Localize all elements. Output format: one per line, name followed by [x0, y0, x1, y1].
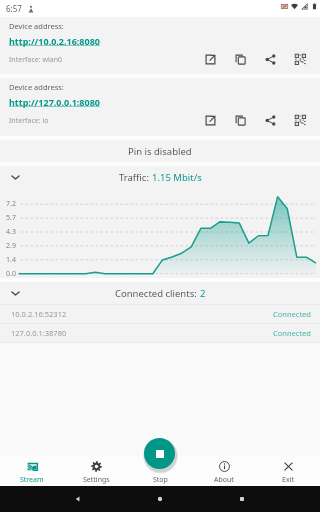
staticText: Interface: lo — [9, 116, 49, 126]
staticText: Exit — [282, 475, 294, 485]
staticText: 6:57 — [6, 3, 22, 14]
staticText: http://127.0.0.1:8080 — [9, 96, 100, 108]
staticText: Connected — [273, 328, 311, 338]
button[interactable]: Open in browser — [195, 42, 225, 77]
button[interactable]: Stop streaming — [144, 438, 175, 469]
button[interactable]: 10.0.2.16:52312 — [0, 305, 320, 323]
button[interactable]: Exit — [256, 456, 320, 486]
staticText: Interface: wlan0 — [9, 55, 62, 65]
button[interactable]: Share address — [255, 42, 285, 77]
staticText: Stream — [20, 475, 44, 485]
button[interactable]: Share address — [255, 103, 285, 138]
staticText: 5.7 — [6, 213, 16, 223]
staticText: 7.2 — [6, 199, 16, 209]
button[interactable]: Connected clients: — [0, 282, 320, 304]
staticText: Traffic: — [119, 171, 152, 184]
button[interactable]: Open in browser — [195, 103, 225, 138]
button[interactable]: Stop — [128, 456, 192, 486]
other: Home — [156, 495, 164, 503]
button[interactable]: Show QR code — [285, 103, 315, 138]
staticText: Device address: — [9, 82, 64, 92]
other: Back — [74, 495, 82, 503]
staticText: 10.0.2.16:52312 — [11, 309, 67, 319]
staticText: Stop — [153, 475, 168, 485]
button[interactable]: Copy address — [225, 42, 255, 77]
staticText: 2.9 — [6, 241, 16, 251]
staticText: 127.0.0.1:38780 — [11, 328, 67, 338]
other: Recents — [238, 495, 246, 503]
staticText: Settings — [83, 475, 110, 485]
button[interactable]: 127.0.0.1:38780 — [0, 324, 320, 342]
staticText: 0.0 — [6, 269, 16, 279]
staticText: 4.3 — [6, 227, 16, 237]
staticText: 1.15 Mbit/s — [152, 171, 202, 184]
staticText: 1.4 — [6, 255, 16, 265]
button[interactable]: Show QR code — [285, 42, 315, 77]
button[interactable]: Settings — [64, 456, 128, 486]
staticText: 2 — [200, 287, 206, 300]
button[interactable]: Pin is disabled — [0, 140, 320, 162]
staticText: Device address: — [9, 21, 64, 31]
staticText: Pin is disabled — [128, 145, 192, 158]
staticText: Connected — [273, 309, 311, 319]
button[interactable]: About — [192, 456, 256, 486]
staticText: http://10.0.2.16:8080 — [9, 35, 100, 47]
staticText: About — [214, 475, 234, 485]
button[interactable]: Traffic: — [0, 166, 320, 188]
staticText: Connected clients: — [115, 287, 200, 300]
button[interactable]: Stream — [0, 456, 64, 486]
button[interactable]: Copy address — [225, 103, 255, 138]
